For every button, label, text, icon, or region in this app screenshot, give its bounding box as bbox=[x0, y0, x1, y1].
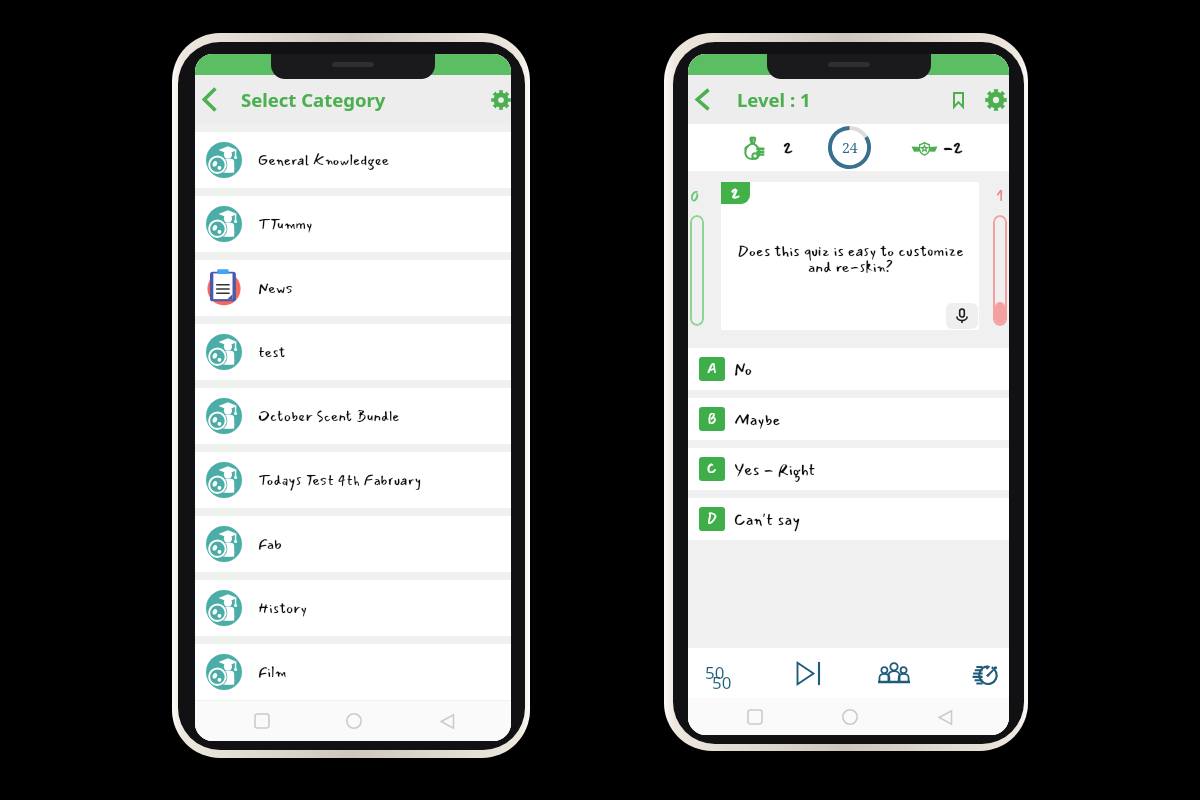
button[interactable]: Back bbox=[195, 75, 223, 124]
staticText: A bbox=[707, 359, 717, 380]
staticText: 2 bbox=[783, 135, 793, 160]
staticText: -2 bbox=[943, 135, 963, 160]
staticText: 24 bbox=[842, 138, 858, 157]
button[interactable]: Fab bbox=[195, 516, 511, 572]
button[interactable]: News bbox=[195, 260, 511, 316]
staticText: test bbox=[258, 341, 286, 364]
button[interactable]: Film bbox=[195, 644, 511, 700]
button[interactable]: Settings bbox=[491, 75, 511, 124]
staticText: No bbox=[734, 357, 753, 382]
button[interactable]: Voice input bbox=[946, 303, 978, 329]
staticText: Film bbox=[258, 661, 287, 684]
staticText: D bbox=[707, 509, 717, 530]
staticText: News bbox=[258, 277, 294, 300]
staticText: 2 bbox=[731, 182, 740, 204]
button[interactable]: Extra time bbox=[962, 650, 1006, 696]
staticText: Does this quiz is easy to customize and … bbox=[737, 239, 964, 279]
button[interactable]: Settings bbox=[985, 75, 1009, 124]
staticText: Todays Test 4th Fabruary bbox=[258, 469, 421, 492]
button[interactable]: B bbox=[688, 398, 1009, 440]
staticText: General Knowledgee bbox=[258, 149, 390, 172]
button[interactable]: Back bbox=[688, 75, 716, 124]
button[interactable]: Fifty fifty bbox=[699, 650, 743, 696]
button[interactable]: Recents bbox=[245, 704, 279, 738]
button[interactable]: TTummy bbox=[195, 196, 511, 252]
staticText: Can't say bbox=[734, 507, 800, 532]
staticText: Maybe bbox=[734, 407, 781, 432]
button[interactable]: October Scent Bundle bbox=[195, 388, 511, 444]
staticText: B bbox=[708, 409, 717, 430]
button[interactable]: Home bbox=[337, 704, 371, 738]
button[interactable]: General Knowledgee bbox=[195, 132, 511, 188]
button[interactable]: Todays Test 4th Fabruary bbox=[195, 452, 511, 508]
staticText: Fab bbox=[258, 533, 282, 556]
staticText: History bbox=[258, 597, 307, 620]
staticText: C bbox=[707, 459, 717, 480]
button[interactable]: test bbox=[195, 324, 511, 380]
staticText: Level : 1 bbox=[737, 87, 811, 112]
button[interactable]: History bbox=[195, 580, 511, 636]
staticText: TTummy bbox=[258, 213, 313, 236]
button[interactable]: Bookmark bbox=[931, 75, 985, 124]
button[interactable]: Back bbox=[430, 704, 464, 738]
button[interactable]: Skip question bbox=[786, 650, 830, 696]
staticText: Select Category bbox=[241, 87, 386, 112]
staticText: 50 bbox=[705, 661, 725, 684]
button[interactable]: D bbox=[688, 498, 1009, 540]
staticText: 50 bbox=[712, 671, 732, 694]
staticText: 1 bbox=[996, 183, 1004, 208]
button[interactable]: C bbox=[688, 448, 1009, 490]
button[interactable]: Back bbox=[928, 700, 962, 734]
button[interactable]: A bbox=[688, 348, 1009, 390]
staticText: Yes - Right bbox=[734, 457, 816, 482]
button[interactable]: Recents bbox=[738, 700, 772, 734]
button[interactable]: Ask the audience bbox=[872, 650, 916, 696]
staticText: October Scent Bundle bbox=[258, 405, 400, 428]
staticText: 0 bbox=[690, 183, 700, 208]
button[interactable]: Home bbox=[833, 700, 867, 734]
